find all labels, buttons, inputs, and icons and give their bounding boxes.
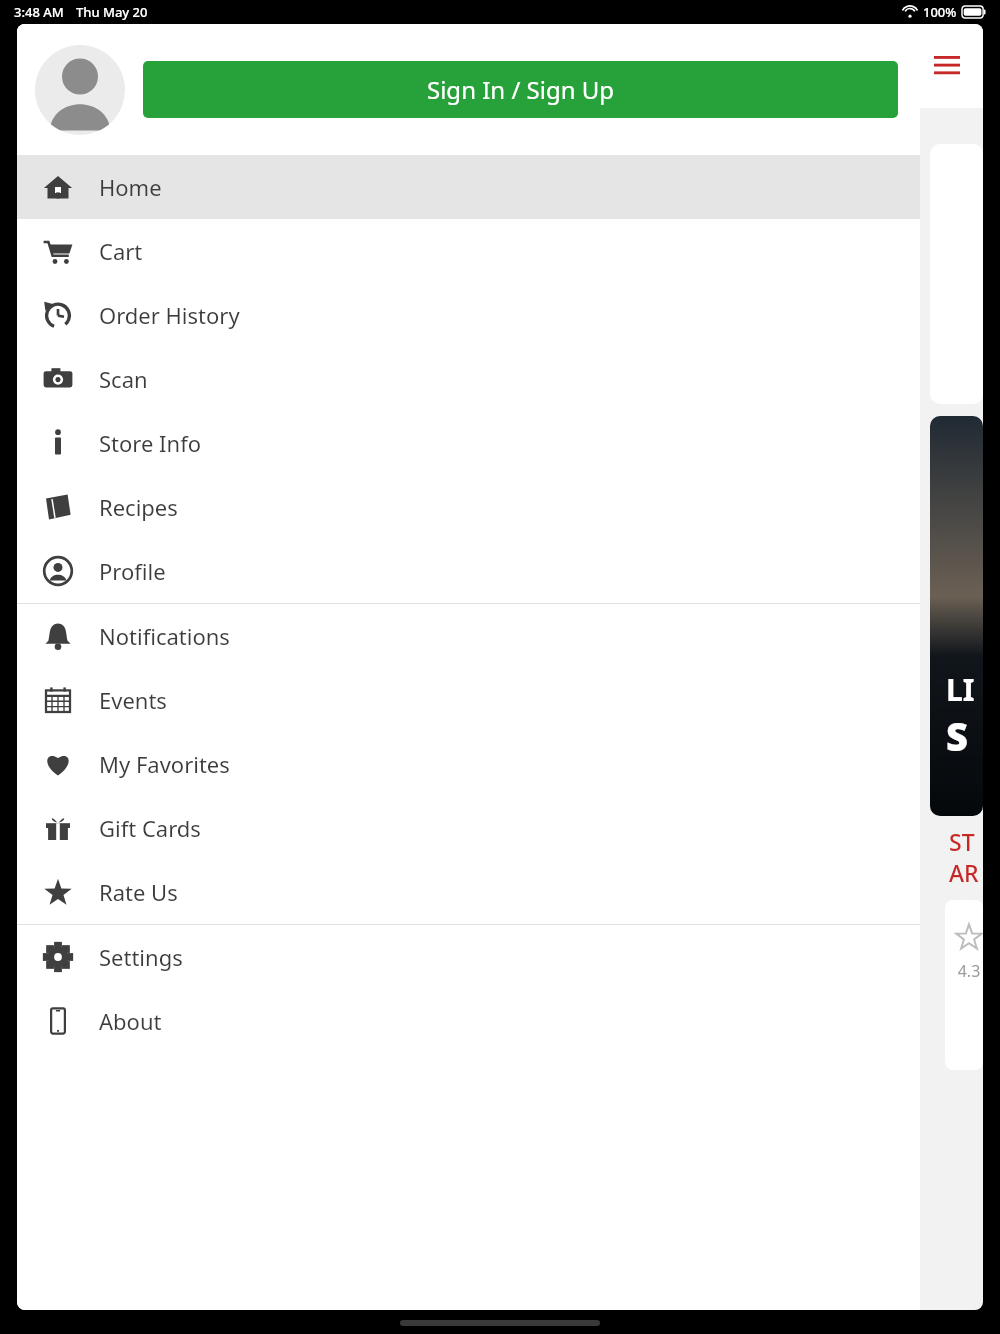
button[interactable]: Order History — [17, 283, 920, 347]
staticText: About — [99, 1006, 162, 1036]
staticText: Home — [99, 172, 162, 202]
button[interactable]: Profile — [17, 539, 920, 603]
staticText: Settings — [99, 942, 183, 972]
staticText: Scan — [99, 364, 148, 394]
staticText: STAR — [949, 826, 983, 888]
button[interactable]: Gift Cards — [17, 796, 920, 860]
staticText: Notifications — [99, 621, 230, 651]
staticText: Order History — [99, 300, 240, 330]
button[interactable]: Home — [17, 155, 920, 219]
staticText: Cart — [99, 236, 143, 266]
staticText: Events — [99, 685, 167, 715]
button[interactable]: LI — [930, 416, 983, 816]
button[interactable]: My Favorites — [17, 732, 920, 796]
button[interactable]: Recipes — [17, 475, 920, 539]
button[interactable]: 4.3 — [945, 900, 983, 1070]
staticText: Thu May 20 — [76, 3, 148, 21]
staticText: Sign In / Sign Up — [427, 73, 615, 106]
staticText: Rate Us — [99, 877, 178, 907]
staticText: Store Info — [99, 428, 202, 458]
button[interactable]: Cart — [17, 219, 920, 283]
staticText: Gift Cards — [99, 813, 201, 843]
staticText: 4.3 — [955, 960, 983, 982]
staticText: Recipes — [99, 492, 178, 522]
button[interactable]: Rate Us — [17, 860, 920, 924]
button[interactable]: Profile picture — [35, 45, 125, 135]
staticText: My Favorites — [99, 749, 230, 779]
button[interactable]: Open navigation menu — [923, 42, 971, 90]
button[interactable]: Scan — [17, 347, 920, 411]
button[interactable]: Settings — [17, 925, 920, 989]
staticText: LI — [946, 669, 975, 710]
button[interactable]: Notifications — [17, 604, 920, 668]
button[interactable]: Events — [17, 668, 920, 732]
staticText: Profile — [99, 556, 166, 586]
button[interactable]: Sign In / Sign Up — [143, 61, 898, 118]
button[interactable]: Store Info — [17, 411, 920, 475]
staticText: 3:48 AM — [14, 3, 64, 21]
staticText: S — [946, 710, 968, 762]
button[interactable]: About — [17, 989, 920, 1053]
staticText: 100% — [923, 3, 957, 21]
